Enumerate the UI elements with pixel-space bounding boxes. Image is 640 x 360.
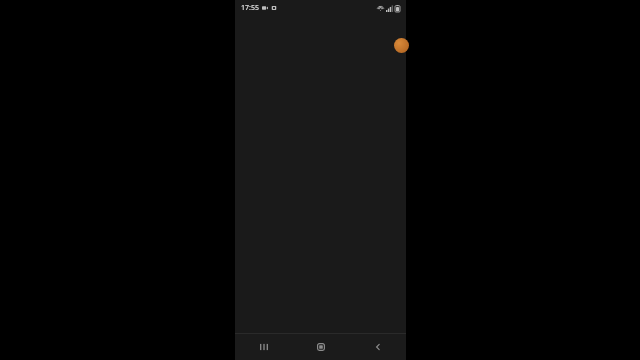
staticText: 17:55: [241, 3, 259, 13]
button[interactable]: Home: [292, 334, 349, 360]
button[interactable]: Floating action button: [394, 38, 409, 53]
button[interactable]: Recent apps: [235, 334, 292, 360]
button[interactable]: Back: [349, 334, 406, 360]
